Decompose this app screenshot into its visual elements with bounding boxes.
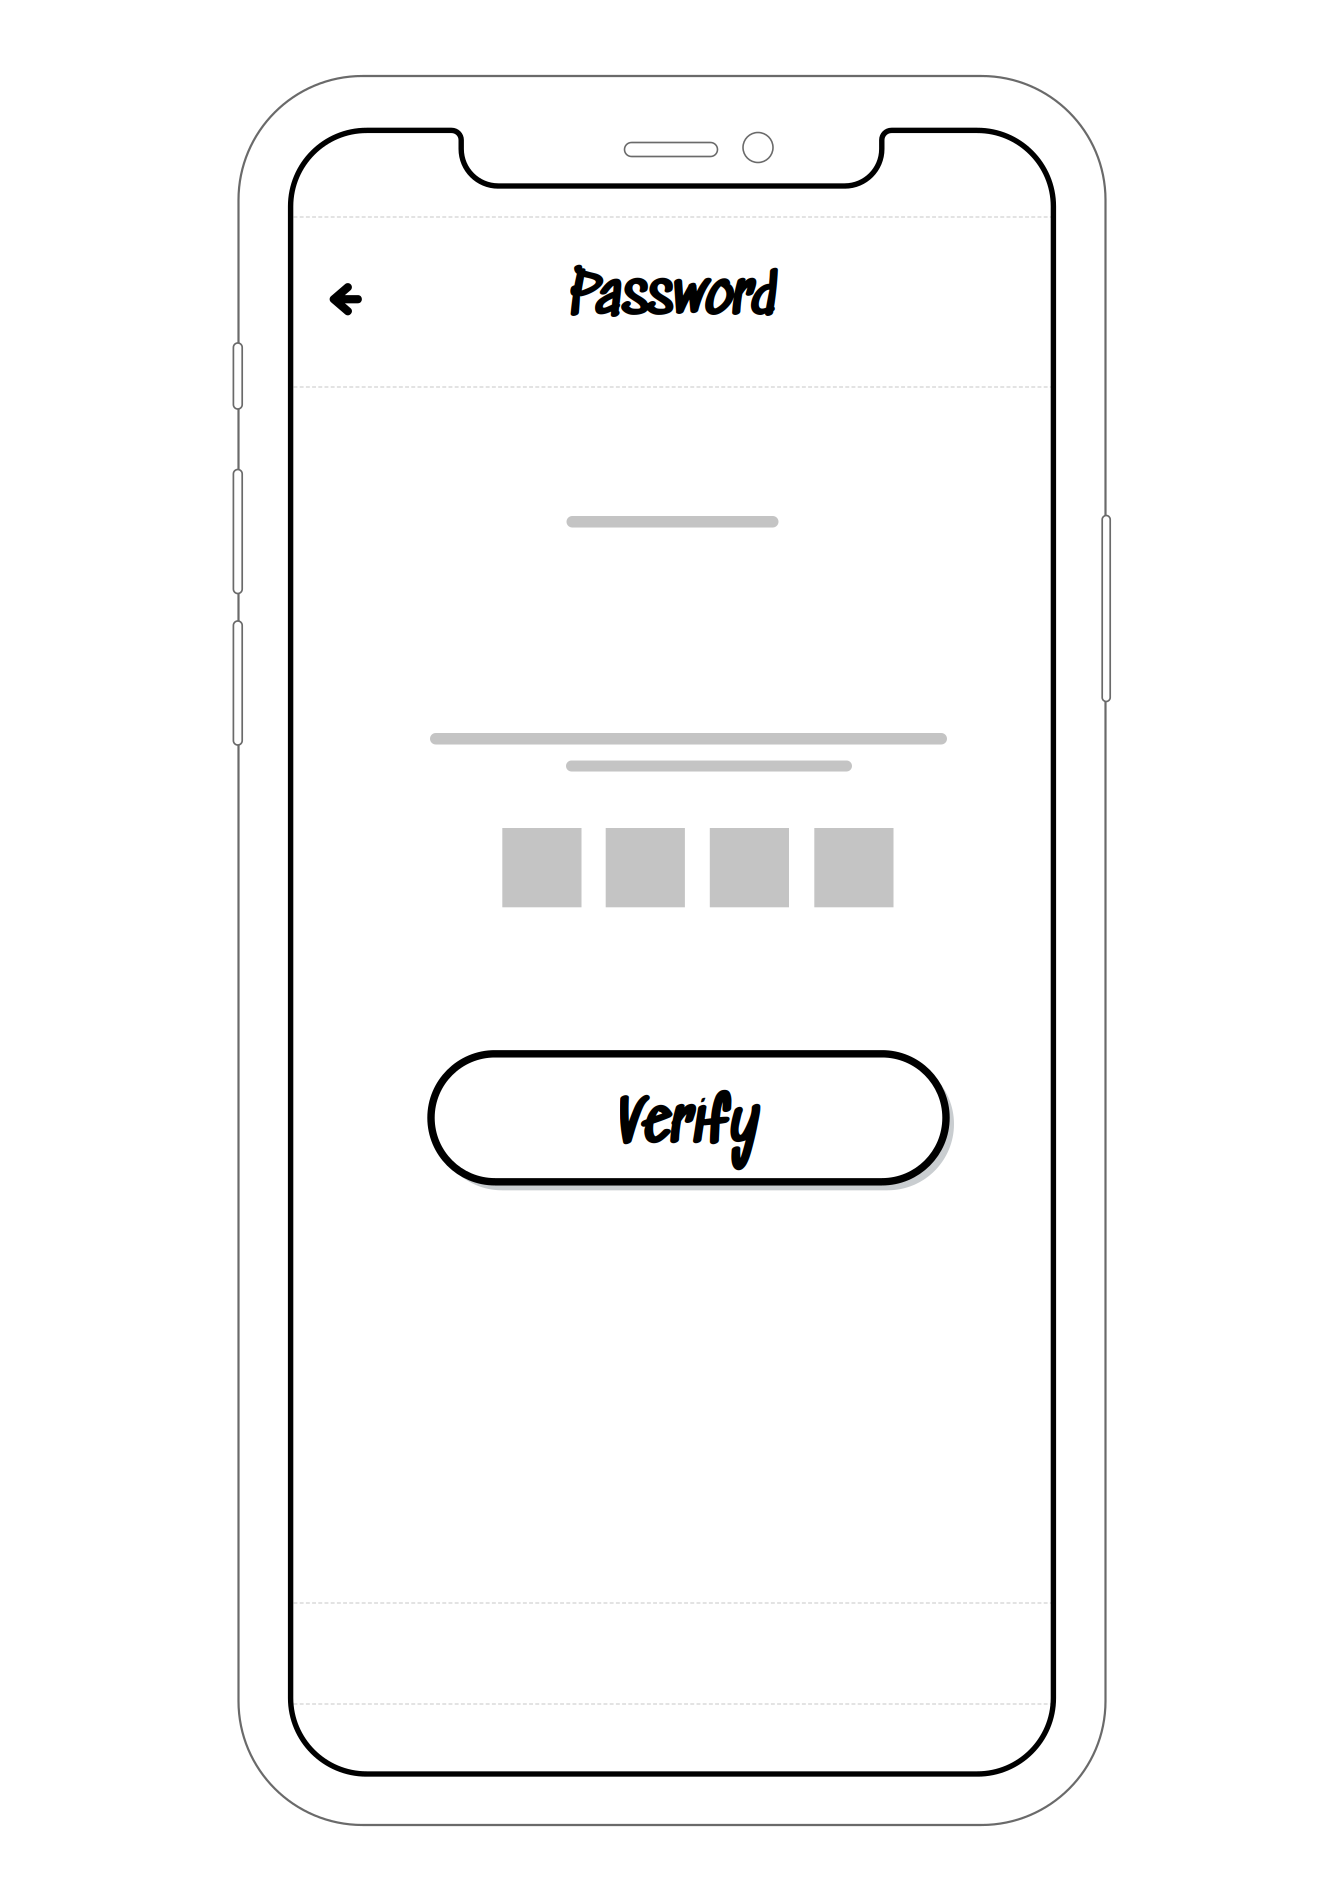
button[interactable]: Verify [425, 1048, 952, 1188]
staticText: Password [569, 266, 775, 334]
button[interactable]: Back [310, 263, 384, 335]
staticText: Verify [618, 1090, 760, 1164]
